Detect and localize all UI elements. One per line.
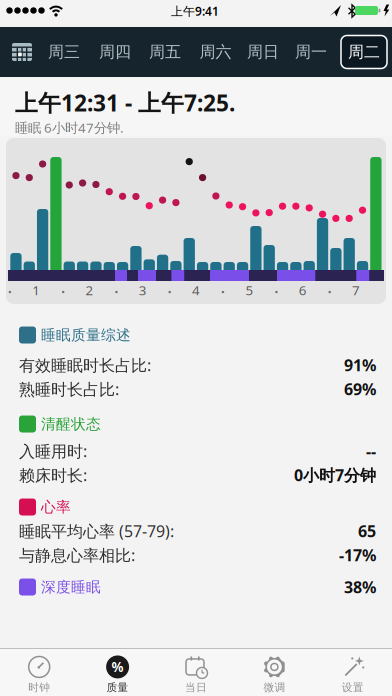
button[interactable]: 设置: [315, 651, 391, 696]
staticText: 0小时7分钟: [294, 464, 376, 486]
staticText: 与静息心率相比:: [19, 544, 135, 566]
button[interactable]: 周五: [142, 35, 188, 68]
staticText: 清醒状态: [41, 415, 101, 433]
staticText: 入睡用时:: [19, 440, 87, 462]
staticText: 3: [139, 281, 147, 299]
staticText: .: [274, 279, 278, 297]
staticText: 周六: [199, 42, 231, 62]
button[interactable]: 周六: [192, 35, 238, 68]
staticText: 设置: [342, 681, 364, 694]
staticText: 时钟: [28, 681, 50, 694]
staticText: 周四: [99, 42, 131, 62]
staticText: 周五: [149, 42, 181, 62]
button[interactable]: 周四: [92, 35, 138, 68]
staticText: 有效睡眠时长占比:: [19, 354, 151, 376]
staticText: 65: [358, 520, 376, 542]
button[interactable]: 周日: [240, 35, 286, 68]
button[interactable]: %: [80, 651, 156, 696]
staticText: .: [8, 279, 12, 297]
staticText: 周日: [247, 42, 279, 62]
button[interactable]: 周二: [341, 35, 387, 68]
button[interactable]: 微调: [236, 651, 312, 696]
button[interactable]: 日历: [7, 37, 37, 67]
button[interactable]: 周三: [41, 35, 87, 68]
staticText: -17%: [339, 544, 376, 566]
staticText: 7: [352, 281, 360, 299]
staticText: .: [221, 279, 225, 297]
staticText: 5: [245, 281, 253, 299]
staticText: 1: [32, 281, 40, 299]
staticText: %: [112, 658, 124, 676]
button[interactable]: 时钟: [1, 651, 77, 696]
staticText: .: [61, 279, 65, 297]
staticText: 4: [192, 281, 200, 299]
staticText: 2: [85, 281, 93, 299]
staticText: .: [328, 279, 332, 297]
staticText: --: [366, 440, 376, 462]
staticText: 睡眠质量综述: [41, 326, 131, 344]
staticText: .: [114, 279, 118, 297]
staticText: 睡眠 6小时47分钟.: [15, 119, 124, 136]
staticText: 睡眠平均心率 (57-79):: [19, 520, 174, 542]
staticText: 38%: [344, 576, 376, 598]
staticText: 深度睡眠: [41, 578, 101, 596]
button[interactable]: 周一: [288, 35, 334, 68]
staticText: .: [168, 279, 172, 297]
staticText: 赖床时长:: [19, 464, 87, 486]
staticText: 周一: [295, 42, 327, 62]
staticText: 周二: [348, 42, 380, 62]
staticText: 上午12:31 - 上午7:25.: [15, 88, 235, 118]
staticText: 熟睡时长占比:: [19, 378, 119, 400]
staticText: 当日: [185, 681, 207, 694]
staticText: 91%: [344, 354, 376, 376]
staticText: 6: [299, 281, 307, 299]
staticText: 69%: [344, 378, 376, 400]
staticText: 周三: [48, 42, 80, 62]
staticText: 微调: [263, 681, 285, 694]
button[interactable]: 当日: [158, 651, 234, 696]
staticText: 心率: [41, 498, 71, 516]
staticText: 质量: [107, 681, 129, 694]
staticText: 上午9:41: [171, 3, 219, 19]
